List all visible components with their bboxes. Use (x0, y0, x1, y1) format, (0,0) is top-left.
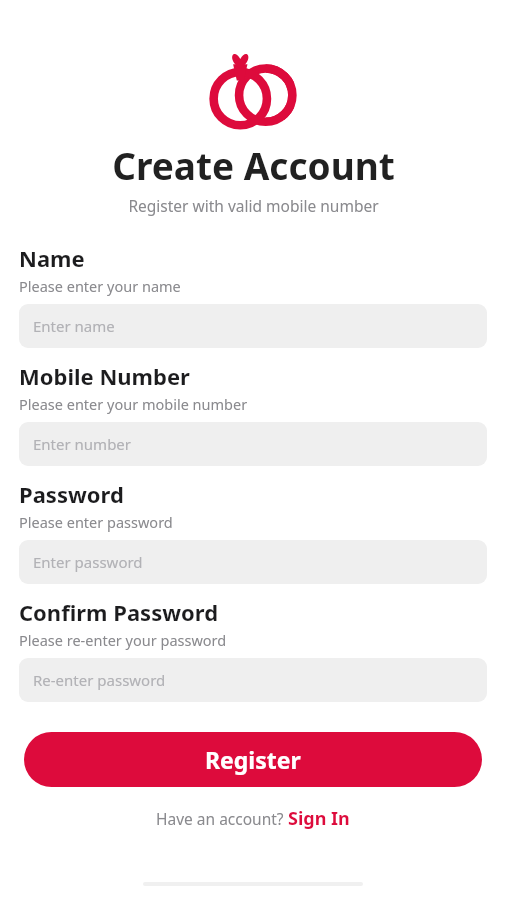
staticText: Enter password (33, 552, 143, 572)
staticText: Have an account? (156, 808, 288, 829)
staticText: Confirm Password (19, 597, 219, 627)
button[interactable]: Enter name (19, 304, 487, 348)
staticText: Enter name (33, 316, 115, 336)
staticText: Re-enter password (33, 670, 166, 690)
staticText: Create Account (112, 140, 395, 190)
staticText: Please re-enter your password (19, 630, 227, 650)
staticText: Please enter password (19, 512, 173, 532)
button[interactable]: Enter number (19, 422, 487, 466)
staticText: Sign In (288, 806, 350, 831)
staticText: Please enter your mobile number (19, 394, 248, 414)
staticText: Register (205, 744, 301, 775)
staticText: Mobile Number (19, 361, 190, 391)
staticText: Password (19, 479, 124, 509)
button[interactable]: Register (24, 732, 482, 787)
staticText: Enter number (33, 434, 132, 454)
button[interactable]: Re-enter password (19, 658, 487, 702)
staticText: Name (19, 243, 85, 273)
button[interactable]: Have an account? (148, 804, 358, 833)
staticText: Please enter your name (19, 276, 181, 296)
other: App logo (212, 50, 294, 120)
button[interactable]: Enter password (19, 540, 487, 584)
staticText: Register with valid mobile number (128, 195, 379, 216)
